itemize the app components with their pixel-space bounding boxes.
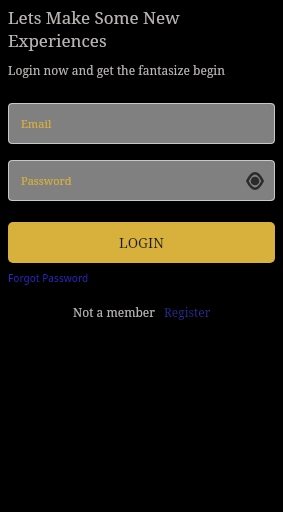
staticText: Login now and get the fantasize begin	[8, 62, 225, 78]
button[interactable]: Password	[8, 160, 275, 201]
staticText: Password	[21, 173, 72, 188]
staticText: Register	[164, 304, 211, 320]
button[interactable]: Email	[8, 103, 275, 144]
staticText: Lets Make Some New Experiences	[8, 6, 275, 52]
staticText: LOGIN	[119, 233, 164, 252]
staticText: Email	[21, 116, 52, 131]
staticText: Forgot Password	[8, 271, 89, 285]
button[interactable]: Register	[164, 304, 211, 320]
button[interactable]: Show password	[244, 170, 266, 192]
button[interactable]: Forgot Password	[8, 271, 89, 285]
button[interactable]: LOGIN	[8, 222, 275, 263]
staticText: Not a member	[73, 304, 155, 320]
